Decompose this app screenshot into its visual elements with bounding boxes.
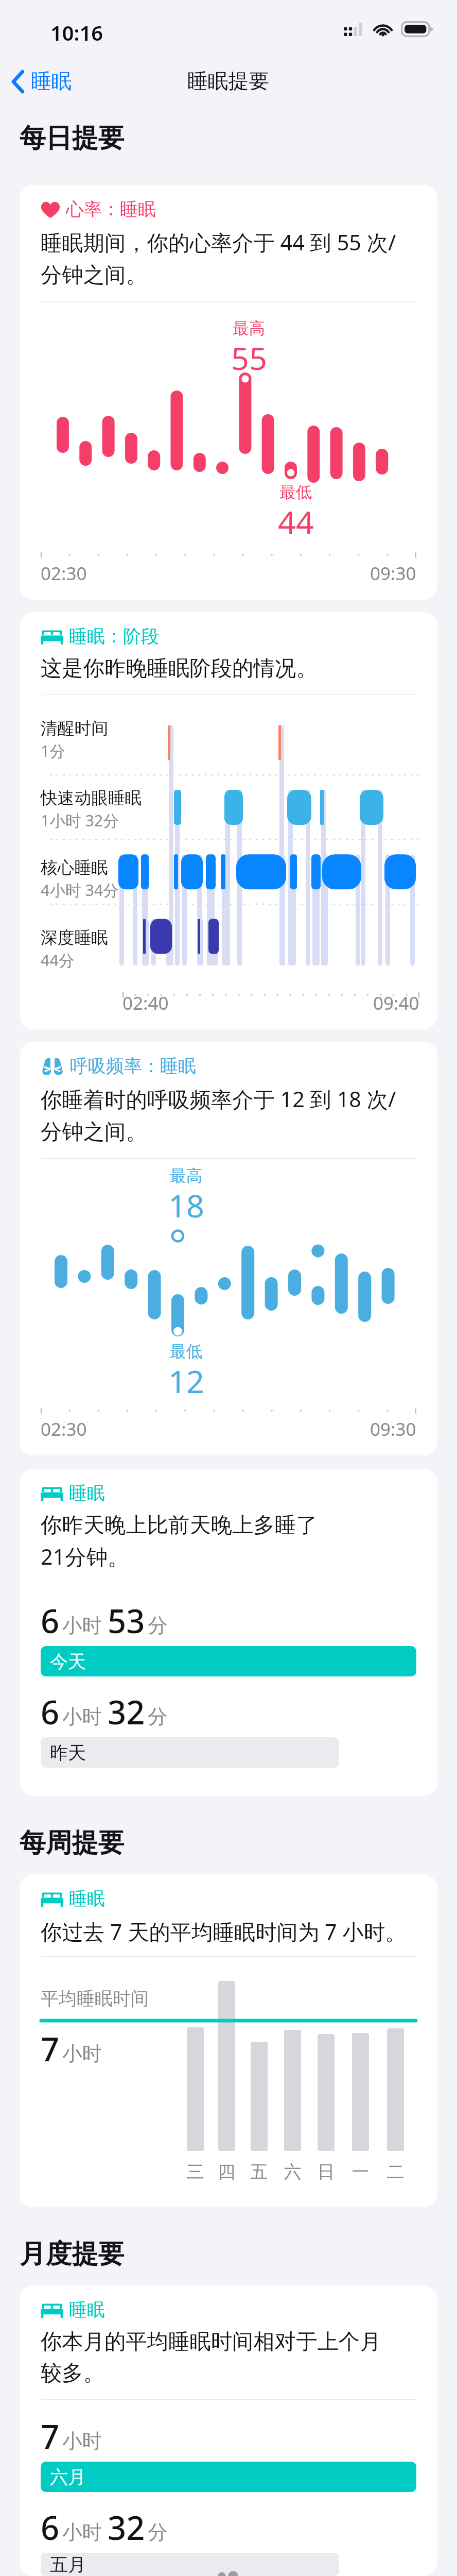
staticText: 最低 — [170, 1342, 203, 1362]
staticText: 五月 — [50, 2553, 86, 2576]
staticText: 平均睡眠时间 — [41, 1987, 149, 2010]
staticText: 09:30 — [370, 1417, 416, 1442]
staticText: 09:30 — [370, 561, 416, 586]
staticText: 分 — [148, 1613, 168, 1638]
button[interactable]: 心率：睡眠 — [20, 185, 437, 600]
staticText: 44分 — [41, 949, 75, 971]
staticText: 小时 — [62, 2520, 102, 2545]
staticText: 6 — [41, 1689, 60, 1734]
staticText: 分 — [148, 2520, 168, 2545]
staticText: 小时 — [62, 1613, 102, 1638]
staticText: 小时 — [62, 2041, 102, 2066]
staticText: 1小时 32分 — [41, 809, 119, 831]
staticText: 昨天 — [50, 1741, 86, 1764]
staticText: 32 — [108, 1689, 145, 1734]
staticText: 睡眠期间，你的心率介于 44 到 55 次/ 分钟之间。 — [41, 228, 396, 289]
staticText: 小时 — [62, 2429, 102, 2453]
button[interactable]: 呼吸频率：睡眠 — [20, 1042, 437, 1455]
staticText: 你昨天晚上比前天晚上多睡了 21分钟。 — [41, 1512, 318, 1571]
staticText: 快速动眼睡眠 — [41, 787, 142, 808]
staticText: 每周提要 — [20, 1826, 125, 1859]
staticText: 最高 — [233, 318, 266, 339]
staticText: 09:40 — [373, 991, 419, 1015]
staticText: 睡眠：阶段 — [69, 625, 160, 648]
staticText: 分 — [148, 1704, 168, 1729]
staticText: 18 — [168, 1184, 204, 1227]
staticText: 六 — [282, 2161, 303, 2183]
staticText: 你睡着时的呼吸频率介于 12 到 18 次/ 分钟之间。 — [41, 1084, 396, 1145]
staticText: 02:30 — [41, 561, 87, 586]
staticText: 一 — [350, 2161, 371, 2183]
staticText: 睡眠提要 — [187, 69, 270, 94]
staticText: 清醒时间 — [41, 718, 108, 739]
staticText: 6 — [41, 2505, 60, 2549]
staticText: 呼吸频率：睡眠 — [70, 1055, 197, 1077]
staticText: 深度睡眠 — [41, 927, 108, 948]
staticText: 心率：睡眠 — [66, 198, 156, 221]
staticText: 六月 — [50, 2466, 86, 2488]
staticText: 二 — [385, 2161, 406, 2183]
staticText: 53 — [108, 1598, 145, 1642]
staticText: 32 — [108, 2505, 145, 2549]
staticText: 这是你昨晚睡眠阶段的情况。 — [41, 655, 318, 682]
staticText: 12 — [168, 1360, 204, 1402]
staticText: 你过去 7 天的平均睡眠时间为 7 小时。 — [41, 1917, 407, 1946]
button[interactable]: 睡眠 — [20, 1874, 437, 2207]
staticText: 睡眠 — [69, 1887, 106, 1910]
staticText: 7 — [41, 2026, 60, 2071]
staticText: 10:16 — [50, 19, 103, 46]
staticText: 1分 — [41, 740, 65, 761]
staticText: 02:40 — [122, 991, 169, 1015]
staticText: 你本月的平均睡眠时间相对于上个月 较多。 — [41, 2328, 381, 2386]
staticText: 小时 — [62, 1704, 102, 1729]
staticText: 今天 — [50, 1650, 86, 1673]
staticText: 月度提要 — [20, 2238, 125, 2270]
staticText: 睡眠 — [69, 2298, 106, 2321]
staticText: 最高 — [170, 1166, 203, 1187]
staticText: 睡眠 — [31, 69, 72, 94]
staticText: 6 — [41, 1598, 60, 1642]
button[interactable]: 睡眠 — [5, 63, 79, 100]
staticText: 睡眠 — [69, 1482, 106, 1504]
staticText: 核心睡眠 — [41, 857, 108, 878]
staticText: 五 — [249, 2161, 270, 2183]
staticText: 02:30 — [41, 1417, 87, 1442]
staticText: 最低 — [279, 482, 312, 503]
staticText: 每日提要 — [20, 122, 125, 155]
staticText: 7 — [41, 2414, 60, 2458]
staticText: 日 — [315, 2161, 337, 2183]
button[interactable]: 睡眠 — [20, 2285, 437, 2576]
staticText: 55 — [231, 336, 267, 379]
staticText: 四 — [216, 2161, 237, 2183]
button[interactable]: 睡眠 — [20, 1469, 437, 1796]
staticText: 44 — [278, 500, 314, 543]
button[interactable]: 睡眠：阶段 — [20, 612, 437, 1029]
staticText: 三 — [185, 2161, 206, 2183]
staticText: 4小时 34分 — [41, 879, 119, 901]
